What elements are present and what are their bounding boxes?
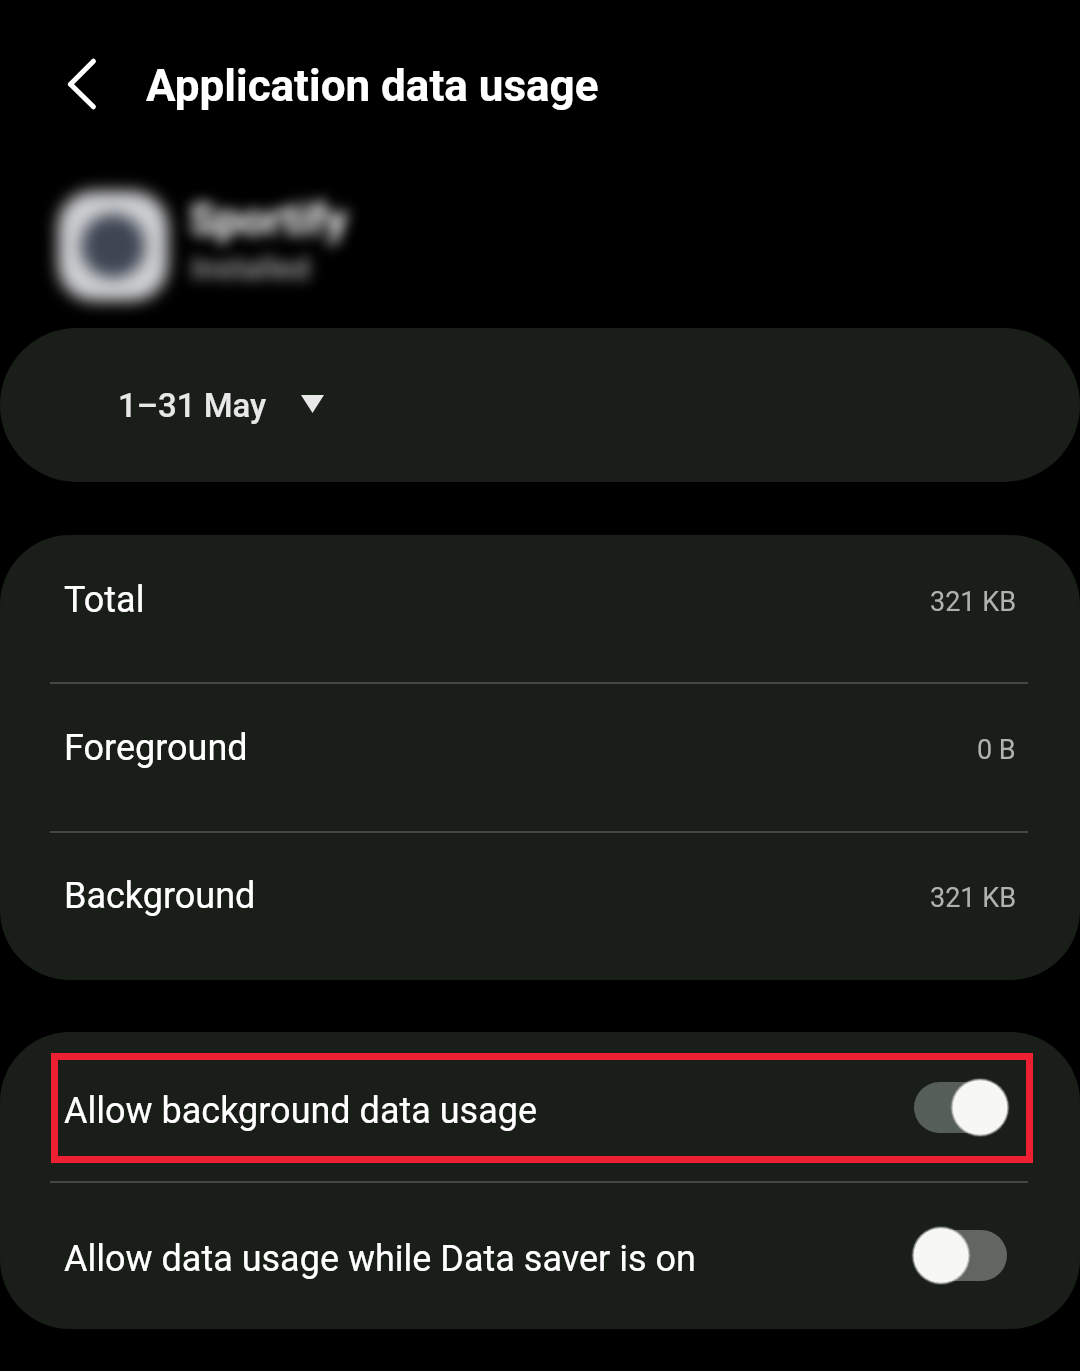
staticText: 321 KB	[930, 882, 1016, 914]
staticText: Application data usage	[146, 60, 599, 112]
staticText: 0 B	[977, 734, 1016, 766]
button[interactable]: Foreground	[0, 683, 1080, 831]
staticText: Installed	[191, 250, 310, 286]
button[interactable]: Total	[0, 535, 1080, 683]
button[interactable]: Background	[0, 831, 1080, 980]
staticText: Foreground	[64, 727, 248, 769]
button[interactable]: Switch off: Allow data usage while Data …	[914, 1230, 1007, 1281]
staticText: 1–31 May	[118, 386, 267, 425]
staticText: Total	[64, 579, 145, 621]
staticText: Allow data usage while Data saver is on	[64, 1238, 696, 1280]
staticText: 321 KB	[930, 586, 1016, 618]
button[interactable]: Back	[40, 48, 112, 120]
button[interactable]: Switch on: Allow background data usage	[914, 1082, 1007, 1133]
button[interactable]: 1–31 May	[0, 328, 1080, 482]
button[interactable]: Allow background data usage	[0, 1032, 1080, 1182]
staticText: Allow background data usage	[64, 1090, 538, 1132]
staticText: Sportify	[189, 194, 348, 246]
button[interactable]: Allow data usage while Data saver is on	[0, 1182, 1080, 1329]
staticText: Background	[64, 875, 256, 917]
